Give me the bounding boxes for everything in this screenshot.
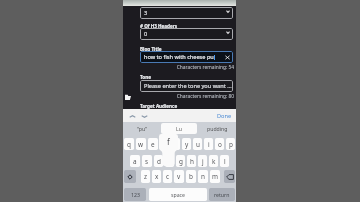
staticText: 123 [131,191,140,198]
staticText: d [157,157,161,166]
staticText: 3 [144,9,148,17]
staticText: space [171,191,186,198]
button[interactable]: i [204,138,213,150]
staticText: m [212,172,218,181]
staticText: u [196,140,200,149]
button[interactable]: p [226,138,235,150]
staticText: c [166,172,170,181]
button[interactable]: c [163,170,172,183]
button[interactable]: return [209,188,235,201]
button[interactable]: 123 [124,188,146,201]
staticText: j [202,157,204,166]
staticText: Tone [140,74,151,80]
button[interactable]: space [149,188,207,201]
button[interactable]: Please enter the tone you want … [140,80,233,92]
button[interactable]: Backspace [224,170,235,183]
button[interactable]: 0 [140,28,233,40]
staticText: Done [217,112,232,120]
button[interactable]: g [176,155,185,167]
staticText: 0 [144,30,148,38]
button[interactable]: r [160,138,169,150]
staticText: b [189,172,193,181]
button[interactable]: j [198,155,207,167]
button[interactable]: 3 [140,7,233,19]
button[interactable]: Shift [124,170,136,183]
staticText: l [224,157,226,166]
button[interactable]: l [220,155,229,167]
staticText: n [201,172,205,181]
button[interactable]: d [154,155,163,167]
staticText: e [151,140,155,149]
button[interactable]: t [171,138,180,150]
staticText: Characters remaining: 54 [140,64,234,71]
button[interactable]: n [198,170,208,183]
staticText: how to fish with cheese pu [144,53,214,61]
button[interactable]: “pu” [124,123,159,134]
button[interactable]: a [130,155,140,167]
staticText: “pu” [137,125,147,132]
staticText: Blog Title [140,46,162,52]
button[interactable]: Lu [161,123,197,134]
button[interactable]: o [215,138,224,150]
staticText: Please enter the tone you want … [144,82,232,90]
staticText: h [190,157,194,166]
button[interactable]: z [141,170,150,183]
staticText: # Of H3 Headers [140,23,178,29]
button[interactable]: pudding [199,123,235,134]
button[interactable]: f [165,155,174,167]
staticText: k [212,157,216,166]
staticText: w [138,140,144,149]
other: Clear text [225,55,230,60]
staticText: x [155,172,159,181]
button[interactable]: k [209,155,218,167]
button[interactable]: m [210,170,220,183]
button[interactable]: q [124,138,134,150]
staticText: s [145,157,149,166]
button[interactable]: Attachment [125,94,131,100]
button[interactable]: Next field [138,110,150,122]
staticText: return [214,191,230,198]
button[interactable]: u [193,138,202,150]
button[interactable]: w [136,138,146,150]
button[interactable]: s [142,155,152,167]
staticText: q [127,140,131,149]
button[interactable]: Done [213,109,236,122]
staticText: o [218,140,222,149]
staticText: v [177,172,181,181]
button[interactable]: y [182,138,191,150]
button[interactable]: Previous field [126,110,138,122]
button[interactable]: e [148,138,158,150]
button[interactable]: v [174,170,184,183]
button[interactable]: how to fish with cheese pu [140,51,233,63]
button[interactable]: b [186,170,196,183]
button[interactable]: x [152,170,161,183]
staticText: Lu [176,125,182,132]
staticText: pudding [207,125,228,132]
staticText: f [167,136,170,147]
staticText: Target Audience [140,103,178,109]
staticText: p [229,140,233,149]
staticText: y [185,140,189,149]
staticText: z [144,172,148,181]
staticText: i [208,140,210,149]
staticText: g [179,157,183,166]
button[interactable]: h [187,155,196,167]
staticText: a [133,157,137,166]
staticText: Characters remaining: 80 [140,93,234,100]
